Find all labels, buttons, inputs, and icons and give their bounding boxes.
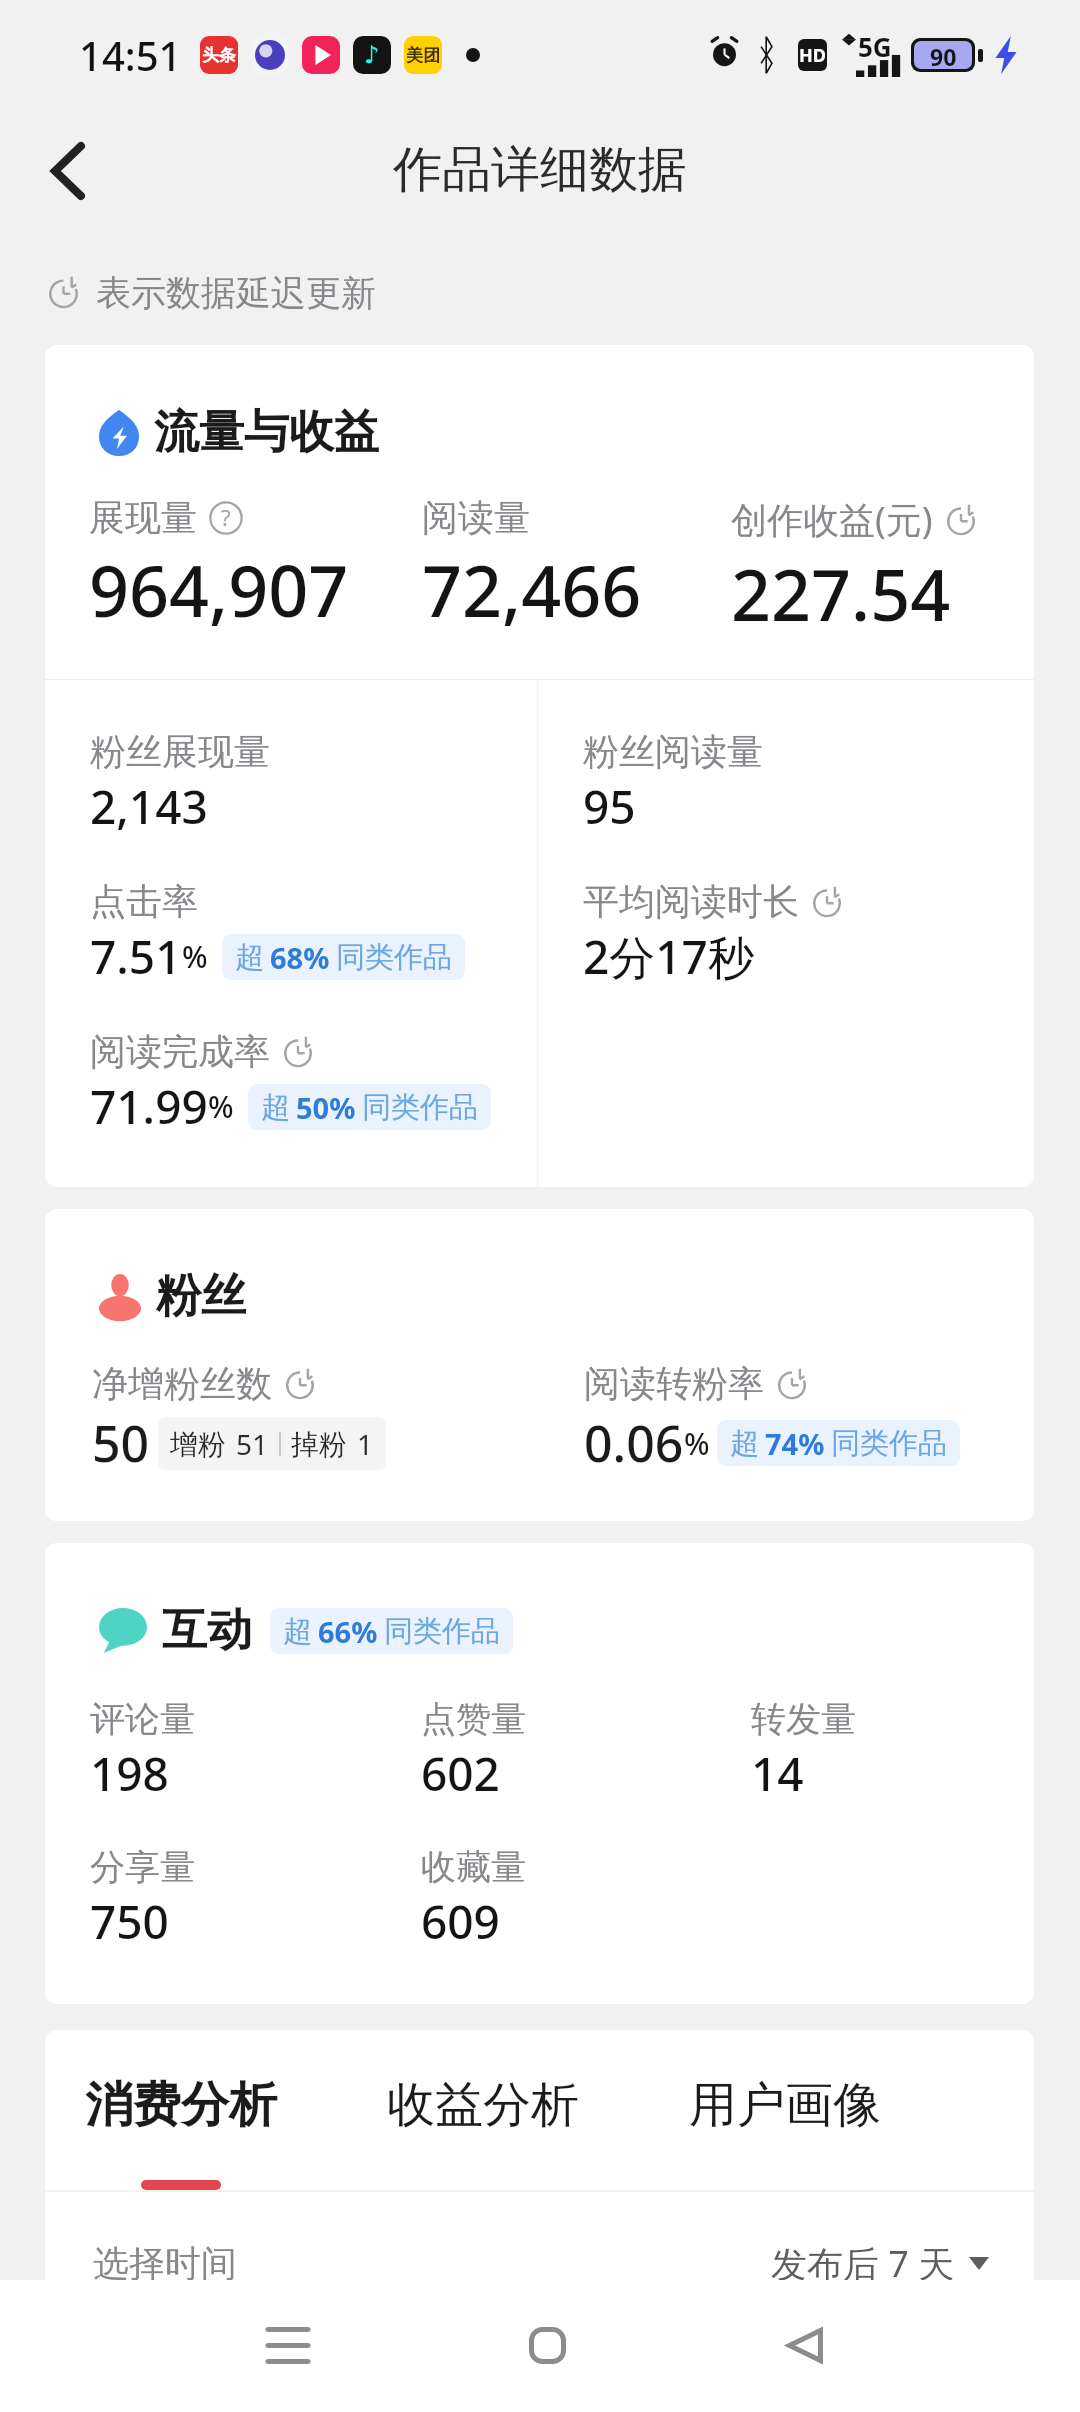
button[interactable]: Home bbox=[492, 2290, 602, 2400]
staticText: HD bbox=[799, 43, 826, 68]
staticText: 95 bbox=[583, 775, 636, 838]
staticText: 5G bbox=[858, 29, 892, 64]
staticText: 表示数据延迟更新 bbox=[96, 271, 376, 315]
staticText: 评论量 bbox=[90, 1697, 195, 1741]
staticText: 同类作品 bbox=[362, 1089, 478, 1126]
staticText: 50% bbox=[296, 1088, 356, 1127]
staticText: 609 bbox=[421, 1890, 500, 1953]
staticText: 2分17秒 bbox=[583, 925, 754, 988]
staticText: 68% bbox=[270, 938, 330, 977]
staticText: 点击率 bbox=[90, 879, 198, 924]
staticText: 750 bbox=[90, 1890, 169, 1953]
staticText: 粉丝阅读量 bbox=[583, 729, 763, 774]
staticText: 74% bbox=[765, 1424, 825, 1463]
staticText: 超 bbox=[261, 1089, 290, 1126]
staticText: 超 bbox=[235, 939, 264, 976]
staticText: 1 bbox=[357, 1425, 374, 1463]
staticText: 14:51 bbox=[79, 28, 182, 82]
staticText: 71.99 bbox=[90, 1075, 208, 1138]
staticText: 超 bbox=[730, 1425, 759, 1462]
staticText: 用户画像 bbox=[689, 2075, 881, 2135]
staticText: ♪ bbox=[364, 41, 380, 69]
staticText: 7.51 bbox=[90, 925, 182, 988]
staticText: 点赞量 bbox=[421, 1697, 526, 1741]
staticText: 流量与收益 bbox=[154, 404, 379, 461]
staticText: 14 bbox=[751, 1742, 804, 1805]
staticText: 分享量 bbox=[90, 1845, 195, 1889]
button[interactable]: 消费分析 bbox=[85, 2075, 277, 2190]
staticText: 2,143 bbox=[90, 775, 208, 838]
staticText: 同类作品 bbox=[384, 1613, 500, 1650]
staticText: % bbox=[684, 1423, 710, 1464]
staticText: 粉丝 bbox=[156, 1268, 246, 1325]
button[interactable]: Back bbox=[13, 116, 123, 226]
staticText: % bbox=[182, 936, 208, 977]
staticText: 阅读量 bbox=[422, 495, 530, 540]
staticText: 同类作品 bbox=[831, 1425, 947, 1462]
staticText: 超 bbox=[283, 1613, 312, 1650]
staticText: 66% bbox=[318, 1612, 378, 1651]
staticText: 互动 bbox=[162, 1602, 252, 1659]
staticText: 同类作品 bbox=[336, 939, 452, 976]
staticText: 消费分析 bbox=[85, 2075, 277, 2135]
staticText: 粉丝展现量 bbox=[90, 729, 270, 774]
staticText: 美团 bbox=[406, 45, 440, 66]
staticText: 阅读转粉率 bbox=[584, 1361, 764, 1406]
staticText: 作品详细数据 bbox=[393, 139, 687, 201]
staticText: 净增粉丝数 bbox=[92, 1361, 272, 1406]
staticText: 创作收益(元) bbox=[731, 495, 933, 544]
staticText: 掉粉 bbox=[291, 1427, 347, 1462]
staticText: 90 bbox=[930, 41, 957, 69]
staticText: 阅读完成率 bbox=[90, 1029, 270, 1074]
staticText: 50 bbox=[92, 1409, 150, 1477]
button[interactable]: Back bbox=[750, 2290, 860, 2400]
staticText: 增粉 bbox=[170, 1427, 226, 1462]
staticText: 964,907 bbox=[89, 542, 349, 637]
staticText: 227.54 bbox=[731, 546, 951, 641]
staticText: 收益分析 bbox=[387, 2075, 579, 2135]
staticText: 72,466 bbox=[422, 542, 642, 637]
staticText: % bbox=[208, 1086, 234, 1127]
staticText: 198 bbox=[90, 1742, 169, 1805]
button[interactable]: 用户画像 bbox=[689, 2075, 881, 2190]
staticText: 转发量 bbox=[751, 1697, 856, 1741]
button[interactable]: 收益分析 bbox=[387, 2075, 579, 2190]
staticText: 选择时间 bbox=[93, 2241, 237, 2286]
staticText: 平均阅读时长 bbox=[583, 879, 799, 924]
staticText: 展现量 bbox=[89, 495, 197, 540]
staticText: 发布后 7 天 bbox=[771, 2239, 955, 2288]
staticText: 收藏量 bbox=[421, 1845, 526, 1889]
staticText: 602 bbox=[421, 1742, 500, 1805]
staticText: 51 bbox=[236, 1425, 269, 1463]
staticText: 0.06 bbox=[584, 1409, 684, 1477]
button[interactable]: Recent apps bbox=[233, 2290, 343, 2400]
staticText: ? bbox=[221, 502, 231, 532]
staticText: 头条 bbox=[202, 45, 236, 66]
